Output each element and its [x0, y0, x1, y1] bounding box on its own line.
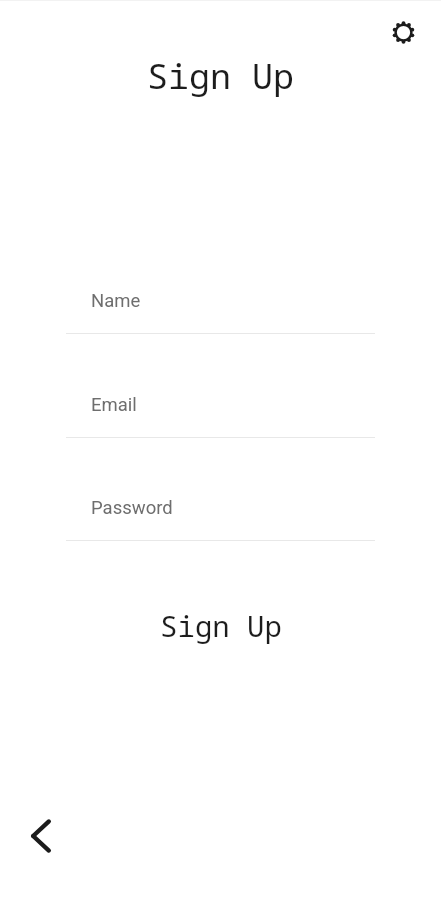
staticText: Password [91, 497, 173, 519]
staticText: Email [91, 394, 137, 416]
button[interactable]: Sign Up [0, 596, 441, 654]
staticText: Sign Up [0, 52, 441, 100]
button[interactable]: Settings [383, 12, 423, 52]
staticText: Sign Up [160, 606, 282, 645]
button[interactable]: Name [66, 288, 375, 334]
button[interactable]: Back [19, 814, 63, 858]
button[interactable]: Password [66, 495, 375, 541]
button[interactable]: Email [66, 392, 375, 438]
staticText: Name [91, 290, 141, 312]
